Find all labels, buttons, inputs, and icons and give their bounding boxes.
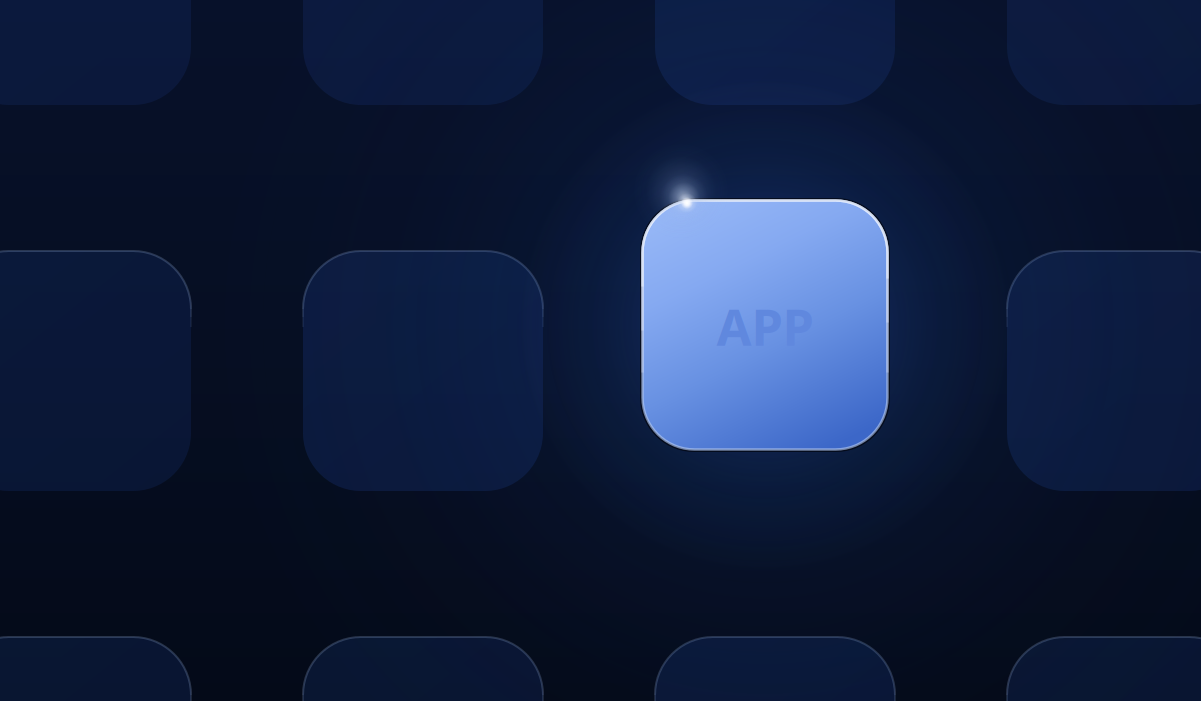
button[interactable]: APP [639, 197, 890, 452]
staticText: APP [716, 292, 813, 360]
